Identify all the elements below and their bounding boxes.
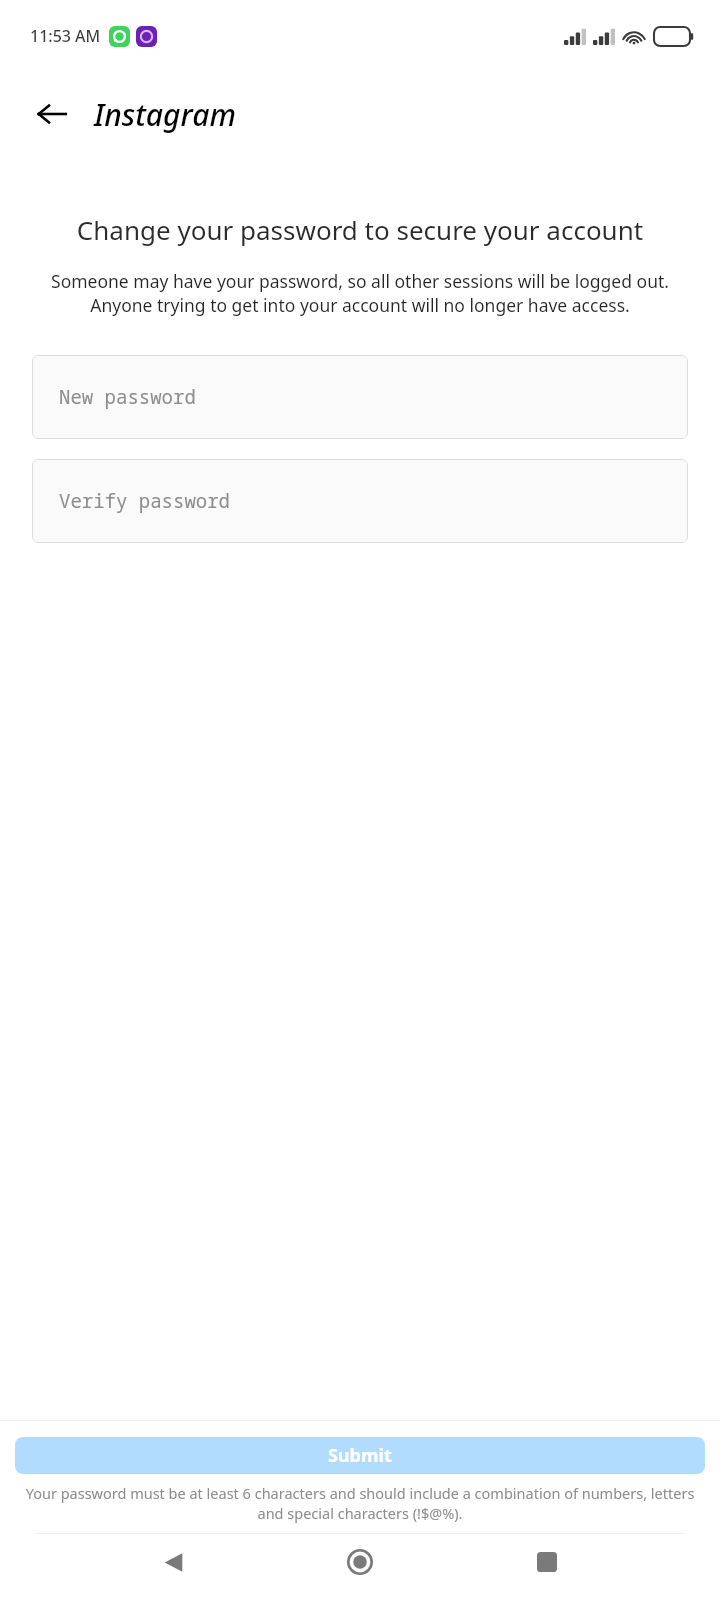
staticText: New password: [59, 384, 196, 410]
staticText: Instagram: [94, 94, 236, 135]
staticText: Change your password to secure your acco…: [26, 212, 694, 247]
button[interactable]: Recent apps: [524, 1539, 570, 1585]
staticText: Submit: [328, 1443, 392, 1468]
button[interactable]: Back: [150, 1539, 196, 1585]
staticText: Your password must be at least 6 charact…: [14, 1483, 706, 1523]
staticText: Someone may have your password, so all o…: [26, 269, 694, 317]
button[interactable]: Home: [337, 1539, 383, 1585]
button[interactable]: Submit: [15, 1437, 705, 1474]
button[interactable]: New password: [32, 355, 688, 439]
staticText: Verify password: [59, 488, 231, 514]
button[interactable]: Verify password: [32, 459, 688, 543]
button[interactable]: Back: [28, 90, 76, 138]
staticText: 11:53 AM: [30, 25, 101, 47]
